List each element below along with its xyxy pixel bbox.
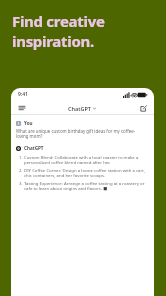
button[interactable]: ChatGPT xyxy=(65,104,99,113)
staticText: You xyxy=(24,120,33,126)
staticText: ChatGPT xyxy=(24,145,44,151)
staticText: Tasting Experience: Arrange a coffee tas… xyxy=(24,180,145,192)
button[interactable]: Open menu xyxy=(17,103,27,113)
staticText: 3. xyxy=(19,180,23,186)
staticText: What are unique custom birthday gift ide… xyxy=(16,128,144,140)
staticText: DIY Coffee Corner: Design a home coffee … xyxy=(24,167,145,178)
staticText: 9:41 xyxy=(18,91,28,98)
button[interactable]: You xyxy=(16,120,148,126)
staticText: inspiration. xyxy=(12,31,94,51)
staticText: Custom Blend: Collaborate with a local r… xyxy=(24,154,145,165)
button[interactable]: ChatGPT xyxy=(16,145,148,151)
staticText: 1. xyxy=(19,154,23,160)
staticText: ChatGPT xyxy=(68,105,91,112)
staticText: Find creative xyxy=(12,11,105,31)
staticText: 2. xyxy=(19,167,23,173)
button[interactable]: New chat xyxy=(138,103,148,113)
